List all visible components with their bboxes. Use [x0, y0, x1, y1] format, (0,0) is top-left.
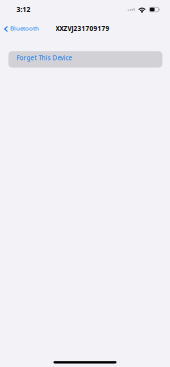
staticText: Forget This Device [16, 53, 72, 62]
staticText: XXZVJ231709179 [55, 24, 109, 33]
button[interactable]: Back to Bluetooth [0, 21, 43, 37]
button[interactable]: Forget This Device [0, 51, 170, 68]
staticText: Bluetooth [10, 24, 39, 32]
staticText: 3:12 [16, 5, 30, 14]
